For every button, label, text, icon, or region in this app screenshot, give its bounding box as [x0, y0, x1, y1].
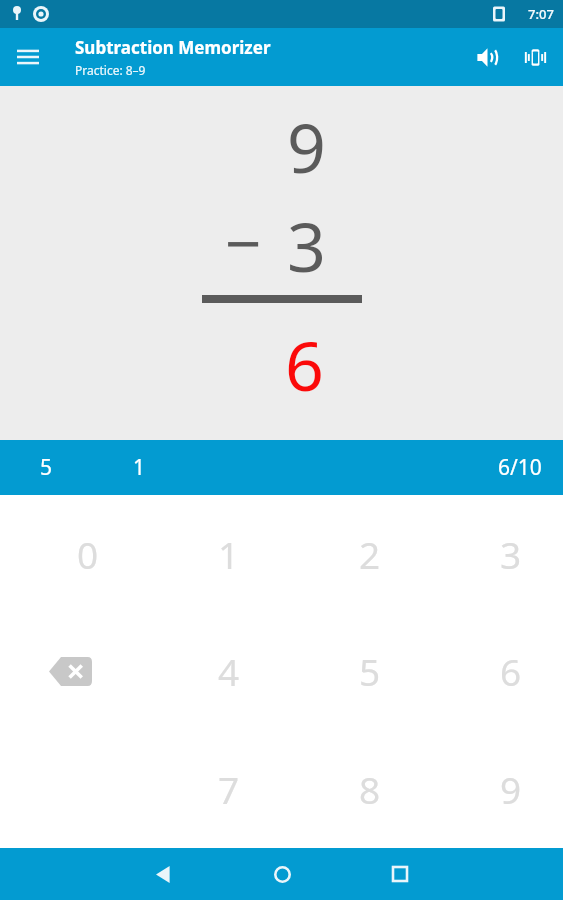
staticText: 6	[500, 646, 522, 696]
staticText: 4	[218, 646, 240, 696]
button[interactable]: Open navigation menu	[0, 29, 56, 85]
staticText: 1	[133, 453, 146, 482]
button[interactable]: Recent apps	[341, 848, 459, 900]
staticText: 3	[500, 529, 522, 579]
staticText: Practice: 8–9	[75, 62, 146, 78]
staticText: 8	[359, 764, 381, 814]
staticText: 9	[287, 100, 326, 193]
button[interactable]: 6	[422, 612, 563, 730]
staticText: 5	[359, 646, 381, 696]
staticText: 3	[287, 199, 326, 292]
button[interactable]: 5	[281, 612, 422, 730]
button[interactable]: 4	[140, 612, 281, 730]
staticText: 0	[77, 529, 99, 579]
button[interactable]: 0	[0, 495, 140, 612]
staticText: Subtraction Memorizer	[75, 36, 271, 59]
staticText: 5	[40, 453, 53, 482]
staticText: 9	[500, 764, 522, 814]
staticText: −	[225, 199, 262, 286]
button[interactable]: 9	[422, 730, 563, 848]
button[interactable]: Home	[223, 848, 341, 900]
button[interactable]: Backspace	[0, 612, 140, 730]
staticText: 2	[359, 529, 381, 579]
staticText: 6/10	[498, 453, 542, 482]
staticText: 7	[218, 764, 240, 814]
button[interactable]: 3	[422, 495, 563, 612]
button[interactable]: Vibration on	[511, 33, 559, 81]
staticText: 6	[285, 318, 324, 411]
staticText: 1	[218, 529, 240, 579]
button[interactable]: Sound on	[463, 33, 511, 81]
staticText: 7:07	[528, 5, 554, 23]
button[interactable]: 2	[281, 495, 422, 612]
button[interactable]: Back	[105, 848, 223, 900]
button[interactable]: 8	[281, 730, 422, 848]
